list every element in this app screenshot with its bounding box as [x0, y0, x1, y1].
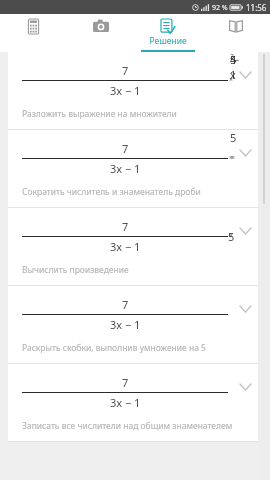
staticText: Решение — [149, 35, 187, 47]
staticText: 11:56 — [246, 2, 267, 13]
button[interactable]: 7 — [0, 208, 270, 286]
button[interactable]: 7 — [0, 52, 270, 130]
staticText: 7 — [122, 375, 129, 390]
staticText: 3x − 1 — [110, 317, 141, 332]
staticText: Записать все числители над общим знамена… — [22, 420, 233, 432]
staticText: 7 — [122, 219, 129, 234]
staticText: 7 — [122, 297, 129, 312]
staticText: 7 — [122, 63, 129, 78]
other: Expand step — [236, 144, 254, 162]
staticText: 3x − 1 — [110, 161, 141, 176]
staticText: 92 % — [212, 3, 228, 13]
other: Expand step — [236, 378, 254, 396]
other: Expand step — [236, 222, 254, 240]
staticText: 3x − 1 — [110, 395, 141, 410]
staticText: Раскрыть скобки, выполнив умножение на 5 — [22, 342, 206, 354]
button[interactable]: 7 — [0, 364, 270, 442]
button[interactable]: Решение — [134, 14, 202, 52]
staticText: Вычислить произведение — [22, 264, 129, 276]
staticText: Сократить числитель и знаменатель дроби — [22, 186, 201, 198]
staticText: Разложить выражение на множители — [22, 108, 177, 120]
other: Expand step — [236, 66, 254, 84]
button[interactable]: Camera — [67, 14, 134, 52]
staticText: 3x − 1 — [110, 83, 141, 98]
staticText: 7 — [122, 141, 129, 156]
button[interactable]: 7 — [0, 286, 270, 364]
button[interactable]: Calculator — [0, 14, 67, 52]
other: Expand step — [236, 300, 254, 318]
button[interactable]: Textbook — [202, 14, 270, 52]
staticText: 3x − 1 — [110, 239, 141, 254]
button[interactable]: 7 — [0, 130, 270, 208]
